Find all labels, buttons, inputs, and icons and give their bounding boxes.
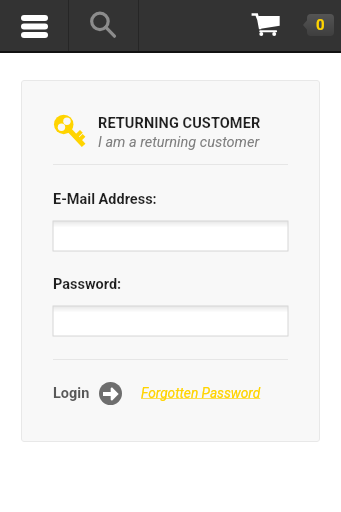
button[interactable]: Search <box>69 0 138 51</box>
staticText: Forgotten Password <box>141 385 261 401</box>
staticText: E-Mail Address: <box>53 191 157 208</box>
staticText: RETURNING CUSTOMER <box>98 115 261 132</box>
button[interactable]: Shopping cart <box>251 0 341 51</box>
staticText: Login <box>53 385 90 402</box>
button[interactable]: Menu <box>0 0 68 51</box>
button[interactable]: Login <box>53 379 122 407</box>
staticText: 0 <box>316 16 325 34</box>
button[interactable]: Forgotten Password <box>141 379 261 407</box>
staticText: Password: <box>53 276 122 293</box>
staticText: I am a returning customer <box>98 134 260 151</box>
